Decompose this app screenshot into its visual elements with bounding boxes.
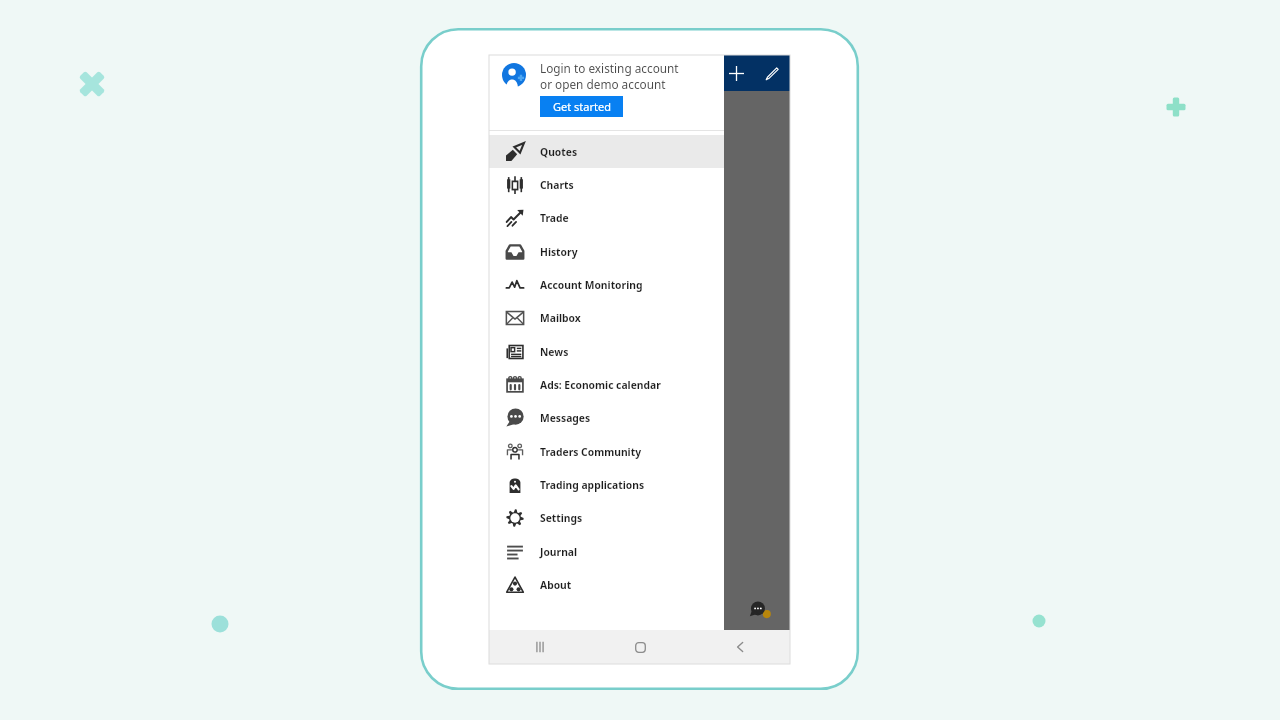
- staticText: Traders Community: [540, 445, 642, 459]
- staticText: Mailbox: [540, 311, 581, 325]
- staticText: History: [540, 245, 578, 259]
- button[interactable]: Settings: [489, 501, 724, 535]
- button[interactable]: Quotes: [489, 135, 724, 168]
- button[interactable]: Traders Community: [489, 435, 724, 468]
- staticText: News: [540, 345, 569, 359]
- button[interactable]: Home: [590, 630, 690, 664]
- button[interactable]: Add symbol: [718, 55, 754, 91]
- button[interactable]: Messages: [489, 401, 724, 435]
- button[interactable]: Charts: [489, 168, 724, 201]
- staticText: Quotes: [540, 145, 578, 159]
- staticText: Trade: [540, 211, 569, 225]
- button[interactable]: Recent apps: [489, 630, 590, 664]
- staticText: Journal: [540, 545, 578, 559]
- button[interactable]: Chat: [746, 598, 772, 624]
- button[interactable]: Back: [690, 630, 790, 664]
- button[interactable]: News: [489, 335, 724, 368]
- button[interactable]: History: [489, 235, 724, 268]
- button[interactable]: Get started: [540, 96, 623, 117]
- button[interactable]: Mailbox: [489, 301, 724, 335]
- staticText: or open demo account: [540, 76, 666, 92]
- button[interactable]: Login to existing account: [489, 55, 724, 130]
- staticText: Ads: Economic calendar: [540, 378, 661, 392]
- button[interactable]: Trade: [489, 201, 724, 235]
- button[interactable]: Edit: [754, 55, 790, 91]
- button[interactable]: Trading applications: [489, 468, 724, 501]
- button[interactable]: Ads: Economic calendar: [489, 368, 724, 401]
- staticText: Charts: [540, 178, 574, 192]
- staticText: Messages: [540, 411, 591, 425]
- button[interactable]: Journal: [489, 535, 724, 568]
- staticText: Trading applications: [540, 478, 645, 492]
- staticText: Get started: [553, 99, 611, 114]
- staticText: Settings: [540, 511, 583, 525]
- staticText: About: [540, 578, 572, 592]
- button[interactable]: Account Monitoring: [489, 268, 724, 301]
- button[interactable]: About: [489, 568, 724, 601]
- staticText: Login to existing account: [540, 60, 679, 76]
- staticText: Account Monitoring: [540, 278, 643, 292]
